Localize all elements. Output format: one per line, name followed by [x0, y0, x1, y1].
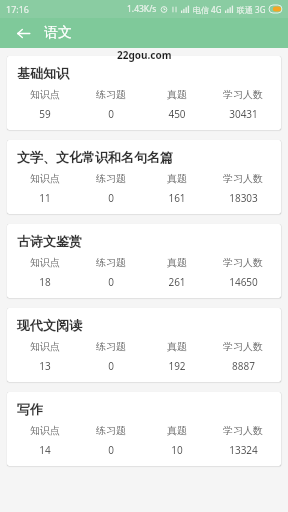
staticText: 0 — [108, 359, 114, 373]
staticText: 知识点 — [30, 424, 60, 437]
staticText: 450 — [168, 107, 186, 121]
staticText: 0 — [108, 107, 114, 121]
staticText: 电信 4G — [193, 4, 222, 15]
staticText: 知识点 — [30, 88, 60, 101]
staticText: 基础知识 — [17, 65, 69, 81]
staticText: 学习人数 — [223, 256, 263, 269]
staticText: 13324 — [229, 443, 258, 457]
staticText: 59 — [39, 107, 51, 121]
staticText: 0 — [108, 275, 114, 289]
staticText: 知识点 — [30, 340, 60, 353]
staticText: 练习题 — [96, 172, 126, 185]
button[interactable]: 现代文阅读 — [7, 308, 281, 382]
staticText: 192 — [168, 359, 186, 373]
staticText: 练习题 — [96, 340, 126, 353]
button[interactable]: 写作 — [7, 392, 281, 466]
staticText: 18303 — [229, 191, 258, 205]
staticText: 知识点 — [30, 256, 60, 269]
staticText: 14650 — [229, 275, 258, 289]
staticText: 10 — [171, 443, 183, 457]
staticText: 11 — [39, 191, 51, 205]
staticText: 练习题 — [96, 424, 126, 437]
staticText: 8887 — [232, 359, 255, 373]
staticText: 真题 — [167, 424, 187, 437]
staticText: 真题 — [167, 340, 187, 353]
staticText: 写作 — [17, 401, 43, 417]
button[interactable]: 文学、文化常识和名句名篇 — [7, 140, 281, 214]
button[interactable]: Back — [10, 20, 36, 46]
staticText: 18 — [39, 275, 51, 289]
staticText: 语文 — [44, 24, 72, 42]
staticText: 联通 3G — [237, 4, 266, 15]
staticText: 真题 — [167, 88, 187, 101]
staticText: 13 — [39, 359, 51, 373]
staticText: 知识点 — [30, 172, 60, 185]
staticText: 学习人数 — [223, 88, 263, 101]
button[interactable]: 古诗文鉴赏 — [7, 224, 281, 298]
staticText: 古诗文鉴赏 — [17, 233, 82, 249]
staticText: 学习人数 — [223, 424, 263, 437]
staticText: 学习人数 — [223, 172, 263, 185]
staticText: 真题 — [167, 256, 187, 269]
staticText: 22gou.com — [117, 48, 172, 62]
staticText: 261 — [168, 275, 186, 289]
staticText: 现代文阅读 — [17, 317, 82, 333]
staticText: 练习题 — [96, 256, 126, 269]
staticText: 0 — [108, 191, 114, 205]
staticText: 30431 — [229, 107, 258, 121]
staticText: 1.43K/s — [127, 3, 157, 15]
staticText: 161 — [168, 191, 186, 205]
staticText: 真题 — [167, 172, 187, 185]
staticText: 练习题 — [96, 88, 126, 101]
staticText: 0 — [108, 443, 114, 457]
staticText: 学习人数 — [223, 340, 263, 353]
staticText: 14 — [39, 443, 51, 457]
button[interactable]: 基础知识 — [7, 56, 281, 130]
staticText: 17:16 — [6, 3, 30, 15]
staticText: 文学、文化常识和名句名篇 — [17, 149, 173, 165]
